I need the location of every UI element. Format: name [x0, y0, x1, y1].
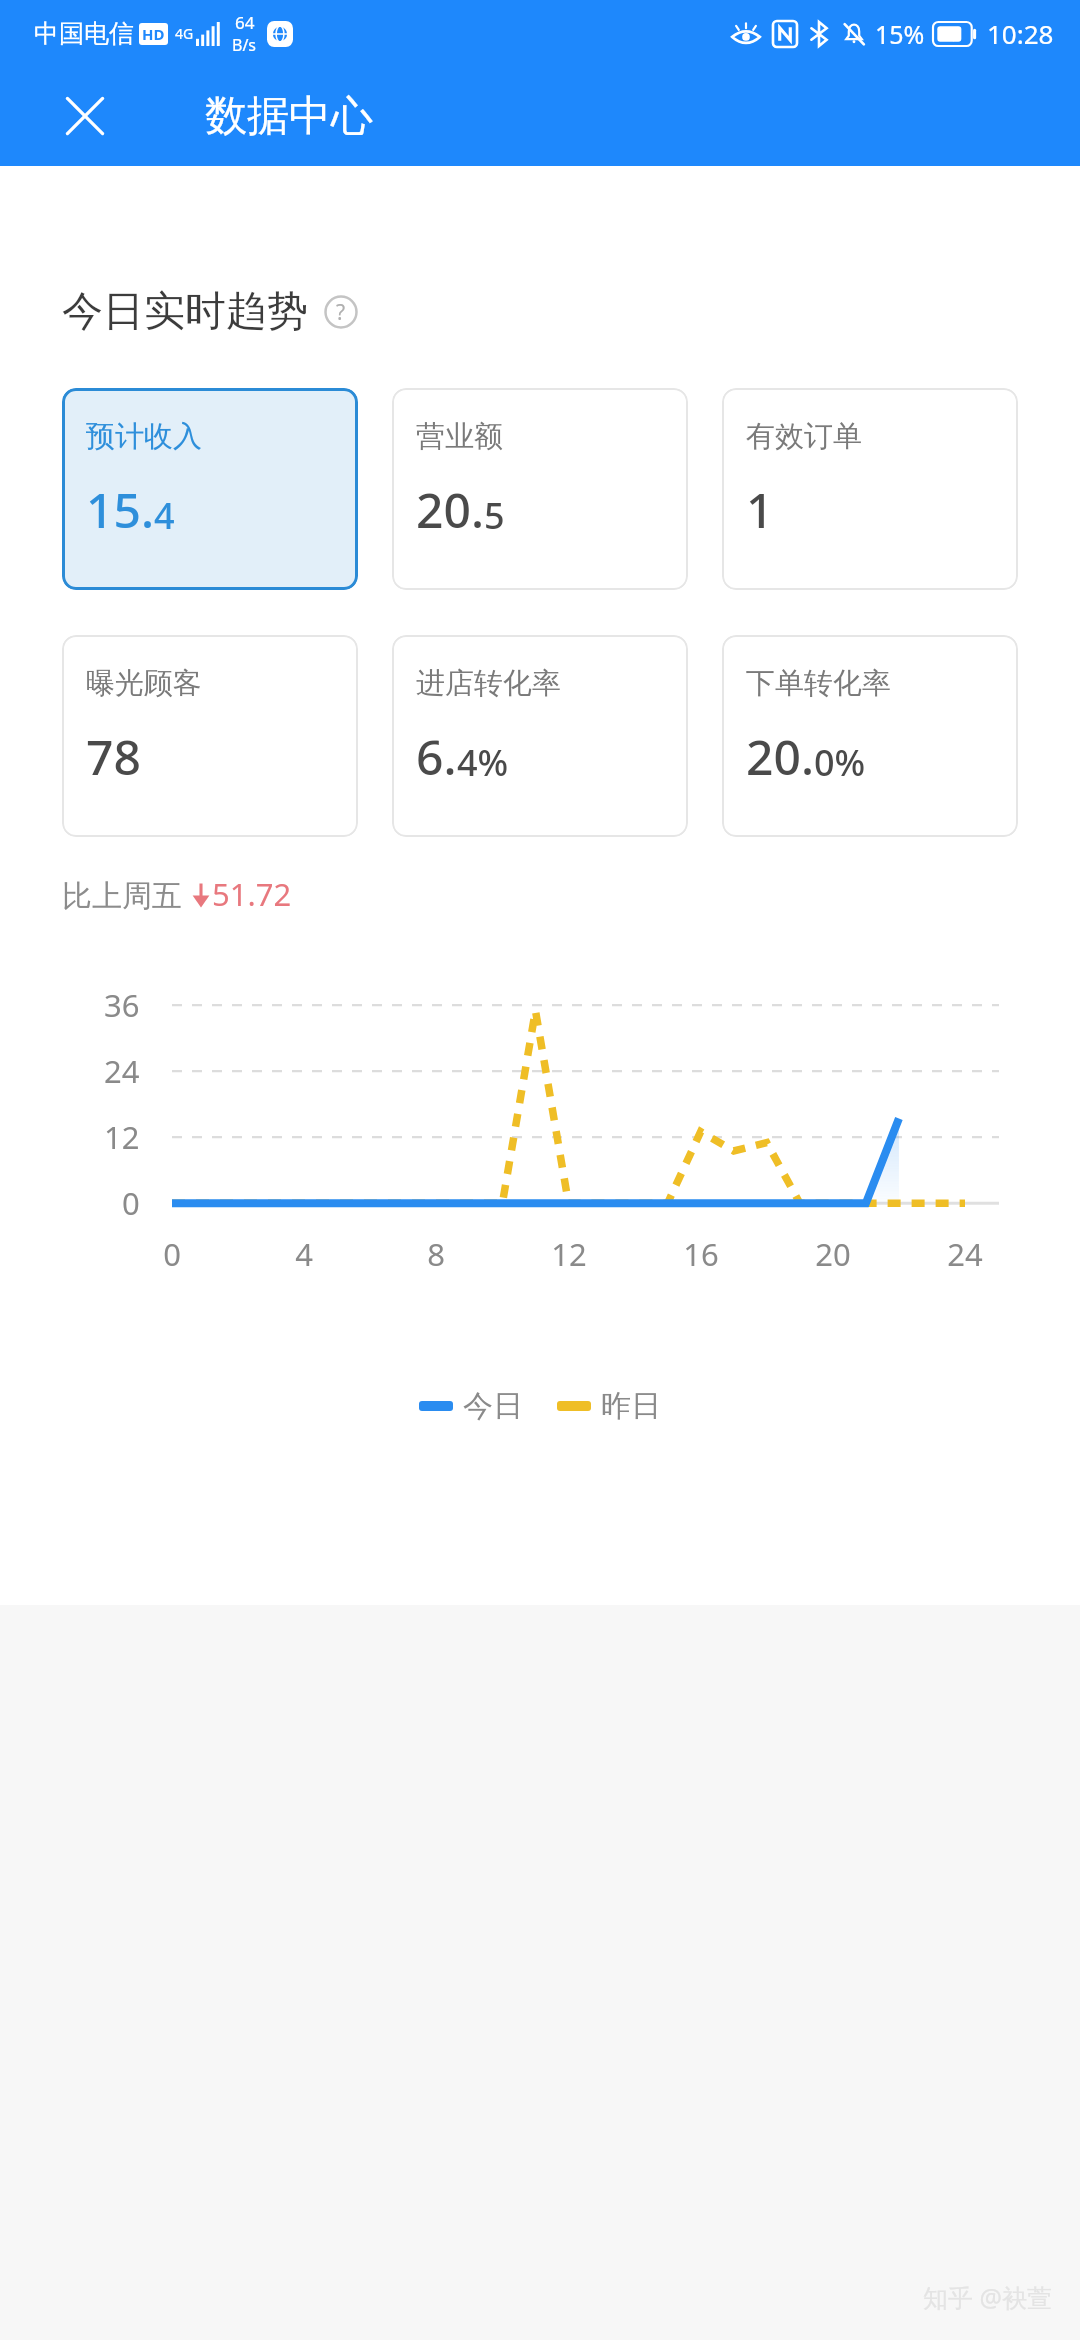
- staticText: 曝光顾客: [86, 665, 202, 702]
- staticText: 下单转化率: [746, 665, 891, 702]
- staticText: 36: [104, 984, 140, 1026]
- staticText: 15%: [875, 17, 925, 51]
- staticText: 12: [551, 1233, 587, 1275]
- staticText: 4: [295, 1233, 313, 1275]
- staticText: 今日实时趋势: [62, 286, 308, 338]
- button[interactable]: 下单转化率: [722, 635, 1018, 837]
- staticText: 10:28: [987, 16, 1054, 51]
- staticText: 4%: [457, 738, 509, 787]
- staticText: 24: [104, 1050, 140, 1092]
- staticText: 营业额: [416, 418, 503, 455]
- button[interactable]: 预计收入: [62, 388, 358, 590]
- staticText: 24: [947, 1233, 983, 1275]
- staticText: 1: [746, 477, 774, 542]
- staticText: 0: [122, 1182, 140, 1224]
- staticText: 5: [484, 491, 505, 540]
- staticText: 15.: [86, 477, 154, 542]
- staticText: 比上周五: [62, 874, 190, 915]
- staticText: 12: [104, 1116, 140, 1158]
- staticText: 20: [815, 1233, 851, 1275]
- staticText: 6.: [416, 724, 457, 789]
- staticText: 51.72: [212, 873, 292, 915]
- staticText: 8: [427, 1233, 445, 1275]
- staticText: ?: [336, 298, 346, 327]
- staticText: 16: [683, 1233, 719, 1275]
- button[interactable]: Help: [324, 295, 358, 329]
- staticText: 0%: [814, 738, 866, 787]
- button[interactable]: 营业额: [392, 388, 688, 590]
- staticText: 20.: [746, 724, 814, 789]
- button[interactable]: 有效订单: [722, 388, 1018, 590]
- staticText: 20.: [416, 477, 484, 542]
- staticText: 4G: [175, 24, 194, 43]
- staticText: B/s: [232, 34, 257, 56]
- staticText: 昨日: [601, 1387, 661, 1425]
- staticText: 知乎 @袂萱: [923, 2280, 1052, 2314]
- staticText: 预计收入: [86, 418, 202, 455]
- staticText: HD: [142, 24, 165, 44]
- staticText: 今日: [463, 1387, 523, 1425]
- staticText: 4: [154, 491, 175, 540]
- staticText: 64: [235, 11, 255, 34]
- staticText: 数据中心: [205, 90, 373, 143]
- button[interactable]: 曝光顾客: [62, 635, 358, 837]
- staticText: 中国电信: [34, 18, 134, 49]
- staticText: 进店转化率: [416, 665, 561, 702]
- staticText: 0: [163, 1233, 181, 1275]
- staticText: 有效订单: [746, 418, 862, 455]
- button[interactable]: 进店转化率: [392, 635, 688, 837]
- button[interactable]: Close: [52, 83, 118, 149]
- staticText: 78: [86, 724, 141, 789]
